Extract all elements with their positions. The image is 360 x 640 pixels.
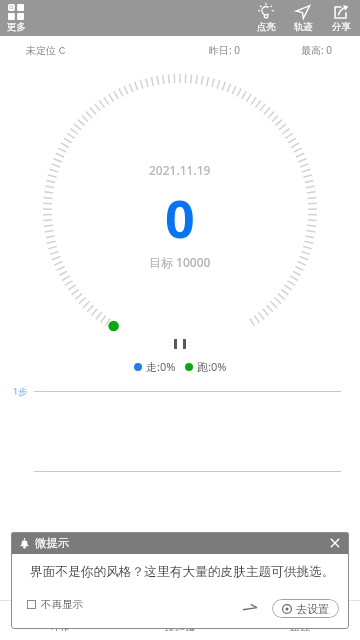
- staticText: 1步: [13, 385, 28, 397]
- button[interactable]: 计步: [0, 602, 120, 631]
- button[interactable]: Pause: [168, 334, 192, 354]
- button[interactable]: Close: [327, 535, 343, 551]
- staticText: 计步: [50, 626, 70, 631]
- staticText: 分享: [332, 21, 351, 33]
- staticText: 目标 10000: [149, 254, 211, 270]
- button[interactable]: 点亮: [248, 0, 284, 33]
- button[interactable]: 更多: [0, 0, 34, 33]
- staticText: 微提示: [35, 536, 70, 550]
- staticText: 不再显示: [41, 598, 83, 611]
- staticText: 我的: [290, 626, 310, 631]
- button[interactable]: 排行榜: [120, 602, 240, 631]
- staticText: 走:0%: [146, 359, 176, 374]
- staticText: 点亮: [257, 21, 276, 33]
- staticText: 排行榜: [165, 626, 195, 631]
- staticText: 2021.11.19: [149, 162, 211, 178]
- staticText: 轨迹: [294, 21, 313, 33]
- staticText: 最高: 0: [301, 43, 332, 57]
- staticText: 跑:0%: [197, 359, 227, 374]
- staticText: 更多: [7, 21, 26, 33]
- staticText: 界面不是你的风格？这里有大量的皮肤主题可供挑选。: [30, 564, 335, 580]
- button[interactable]: 我的: [240, 602, 360, 631]
- button[interactable]: 分享: [323, 0, 359, 33]
- staticText: 去设置: [296, 602, 329, 616]
- staticText: 0: [165, 182, 195, 253]
- button[interactable]: 去设置: [272, 599, 339, 618]
- staticText: 未定位: [26, 44, 56, 57]
- button[interactable]: 不再显示: [26, 596, 84, 613]
- staticText: 昨日: 0: [209, 43, 240, 57]
- button[interactable]: 未定位: [26, 44, 66, 57]
- button[interactable]: 轨迹: [285, 0, 321, 33]
